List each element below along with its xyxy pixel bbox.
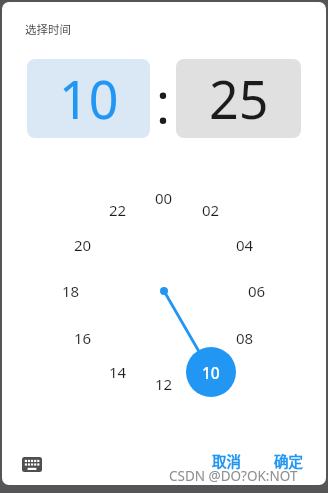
staticText: 12 [155,374,173,394]
staticText: 10 [202,362,220,382]
staticText: 18 [62,281,80,301]
button[interactable]: 06 [240,280,274,302]
button[interactable]: 12 [147,373,181,395]
staticText: 06 [248,281,266,301]
staticText: 14 [109,362,127,382]
staticText: 02 [202,200,220,220]
button[interactable]: 16 [66,327,100,349]
staticText: 25 [209,63,269,134]
button[interactable]: 取消 [199,443,253,477]
staticText: 10 [59,63,119,134]
button[interactable]: 14 [101,361,135,383]
staticText: 04 [236,235,254,255]
button[interactable]: 确定 [261,443,315,477]
button[interactable]: 22 [101,199,135,221]
staticText: 10 [202,362,220,383]
staticText: CSDN @DO?OK:NOT [169,467,298,485]
staticText: 22 [109,200,127,220]
staticText: 00 [155,188,173,208]
staticText: 确定 [274,450,303,471]
button[interactable]: 10 [194,361,228,383]
button[interactable]: 10 [186,347,236,397]
staticText: 20 [74,235,92,255]
button[interactable]: 18 [54,280,88,302]
button[interactable]: 10 [27,59,150,138]
staticText: 16 [74,328,92,348]
button[interactable]: 25 [176,59,301,138]
button[interactable]: 04 [228,234,262,256]
button[interactable]: 20 [66,234,100,256]
staticText: 取消 [212,450,241,471]
staticText: 选择时间 [25,21,71,38]
button[interactable]: 08 [228,327,262,349]
button[interactable] [12,448,52,480]
button[interactable]: 02 [194,199,228,221]
staticText: 08 [236,328,254,348]
button[interactable]: 00 [147,187,181,209]
